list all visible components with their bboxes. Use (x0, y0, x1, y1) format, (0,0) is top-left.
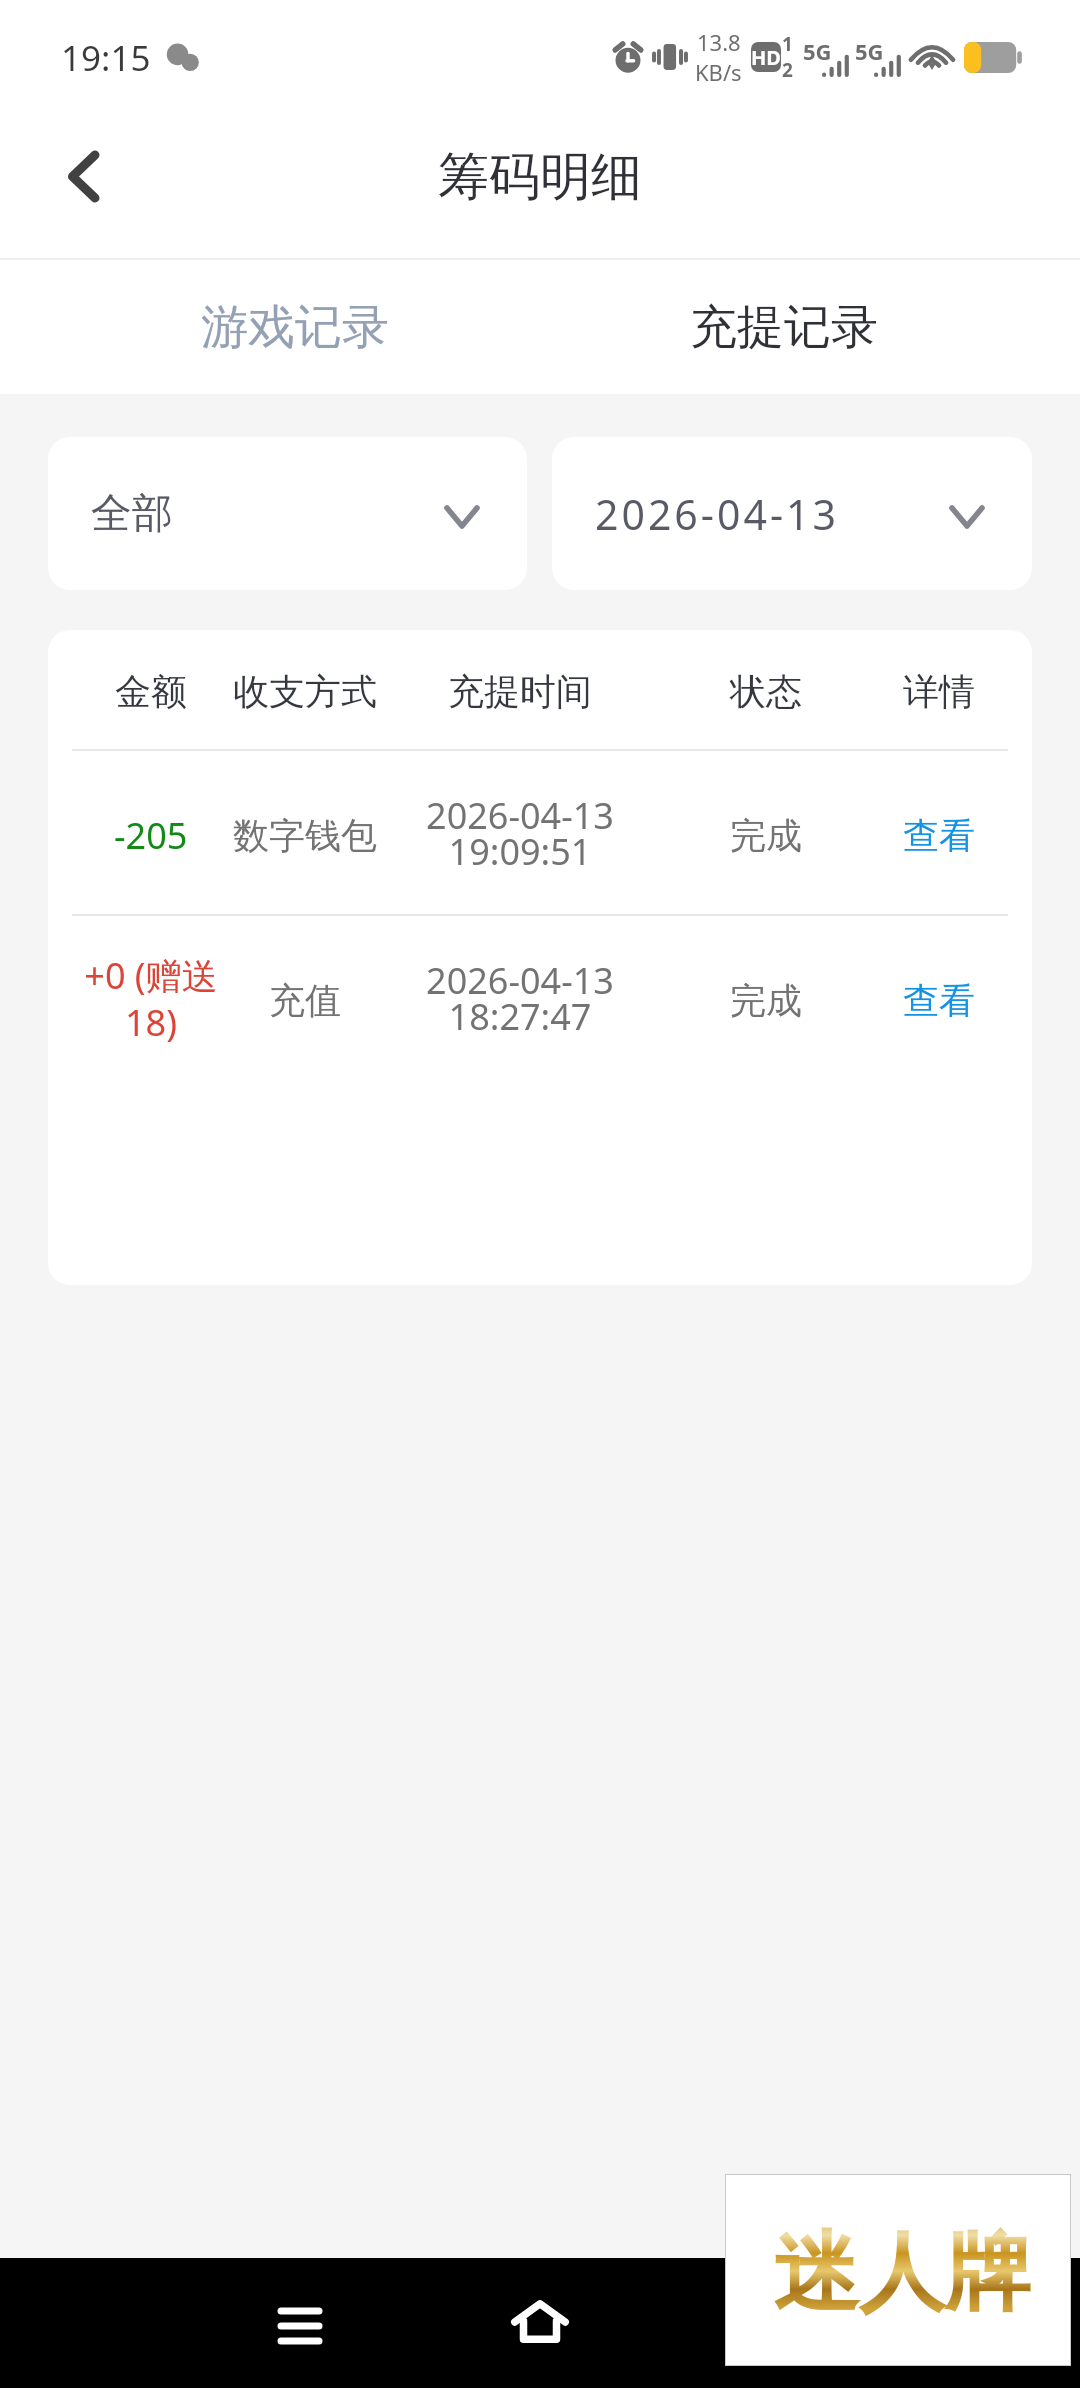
staticText: 2026-04-13 (595, 486, 840, 542)
button[interactable]: 全部 (48, 437, 527, 590)
button[interactable]: 迷人牌 logo (725, 2174, 1071, 2366)
staticText: 充提记录 (690, 298, 878, 357)
staticText: HD (751, 44, 781, 71)
staticText: 状态 (730, 669, 802, 714)
button[interactable]: 游戏记录 (145, 260, 445, 394)
staticText: 19:15 (61, 34, 151, 82)
staticText: 完成 (730, 978, 802, 1023)
button[interactable]: 充提记录 (634, 260, 934, 394)
staticText: 充值 (269, 978, 341, 1023)
staticText: 查看 (903, 813, 975, 858)
staticText: -205 (114, 811, 188, 860)
staticText: 金额 (115, 669, 187, 714)
button[interactable]: 2026-04-13 (552, 437, 1032, 590)
staticText: 5G (855, 36, 884, 66)
staticText: +0 (赠送 18) (80, 951, 222, 1047)
staticText: 游戏记录 (201, 298, 389, 357)
button[interactable]: Back (0, 105, 140, 258)
staticText: 数字钱包 (233, 813, 377, 858)
staticText: 13.8 (697, 27, 741, 57)
staticText: 5G (803, 36, 832, 66)
staticText: 详情 (903, 669, 975, 714)
staticText: 收支方式 (233, 669, 377, 714)
button[interactable]: Recent apps (240, 2265, 360, 2385)
staticText: 查看 (903, 978, 975, 1023)
staticText: 2026-04-13 19:09:51 (426, 791, 614, 876)
staticText: 筹码明细 (438, 145, 642, 209)
staticText: 完成 (730, 813, 802, 858)
staticText: 全部 (91, 488, 173, 540)
button[interactable]: -205 (48, 751, 1032, 914)
staticText: 2 (782, 57, 793, 83)
staticText: 1 (782, 31, 793, 57)
button[interactable]: +0 (赠送 18) (48, 916, 1032, 1079)
staticText: 迷人牌 (773, 2219, 1031, 2327)
staticText: 2026-04-13 18:27:47 (426, 956, 614, 1041)
button[interactable]: 查看 (859, 754, 1019, 917)
staticText: 充提时间 (448, 669, 592, 714)
button[interactable]: Home (480, 2261, 600, 2381)
staticText: KB/s (695, 57, 742, 87)
button[interactable]: 查看 (859, 919, 1019, 1082)
